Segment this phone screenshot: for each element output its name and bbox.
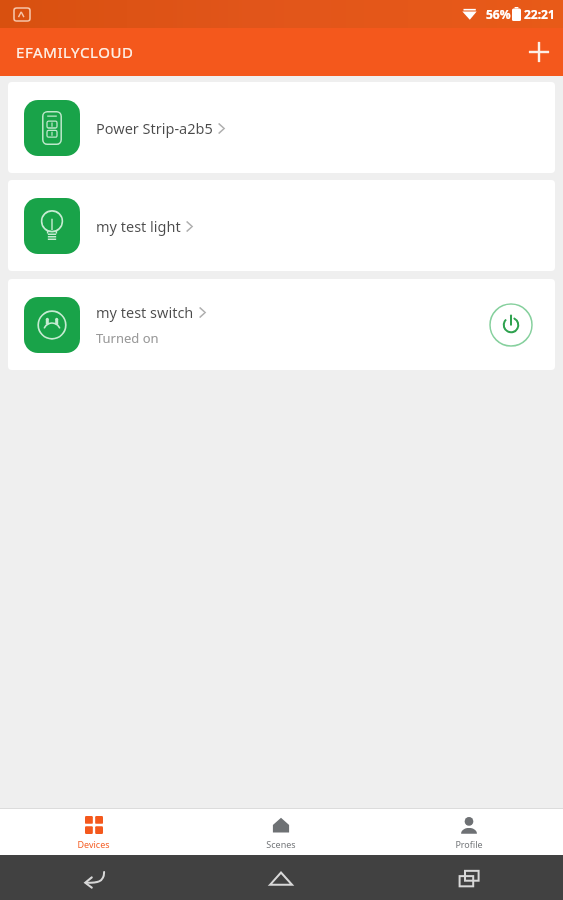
staticText: my test switch [96, 302, 194, 322]
button[interactable]: Home [261, 858, 301, 898]
button[interactable]: Toggle power [483, 297, 539, 353]
button[interactable]: Profile [375, 809, 563, 855]
staticText: EFAMILYCLOUD [16, 42, 134, 62]
button[interactable]: Scenes [187, 809, 375, 855]
staticText: 56% [486, 6, 511, 22]
staticText: Scenes [266, 838, 296, 850]
staticText: Devices [77, 838, 110, 850]
staticText: Profile [455, 838, 483, 850]
button[interactable]: Back [74, 858, 114, 898]
button[interactable]: Recent apps [449, 858, 489, 898]
staticText: Power Strip-a2b5 [96, 118, 213, 138]
button[interactable]: Power Strip-a2b5 [8, 82, 555, 173]
button[interactable]: my test switch [8, 279, 555, 370]
staticText: 22:21 [524, 6, 555, 22]
button[interactable]: Devices [0, 809, 187, 855]
staticText: my test light [96, 216, 181, 236]
button[interactable]: my test light [8, 180, 555, 271]
button[interactable]: Add device [515, 28, 563, 76]
staticText: Turned on [96, 329, 159, 347]
